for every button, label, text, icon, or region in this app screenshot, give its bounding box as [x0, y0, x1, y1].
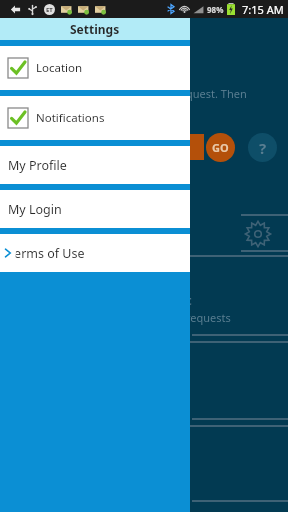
button[interactable]: My Login — [0, 190, 190, 228]
staticText: GO — [212, 140, 229, 155]
button[interactable]: Terms of Use — [0, 234, 190, 272]
button[interactable]: Help — [248, 133, 277, 162]
staticText: Location — [36, 60, 83, 76]
staticText: quest. Then — [186, 86, 247, 101]
button[interactable]: Settings — [243, 219, 273, 249]
staticText: t — [186, 291, 192, 309]
staticText: Settings — [70, 21, 120, 37]
staticText: My Profile — [8, 157, 67, 174]
button[interactable]: Notifications — [0, 96, 190, 140]
staticText: requests — [186, 310, 231, 325]
staticText: 98% — [207, 4, 224, 15]
button[interactable]: Open drawer — [0, 238, 16, 268]
button[interactable]: GO — [206, 133, 235, 162]
staticText: 7:15 AM — [242, 2, 284, 17]
staticText: Notifications — [36, 110, 105, 126]
staticText: Terms of Use — [8, 245, 85, 262]
staticText: ? — [259, 138, 267, 158]
staticText: ET — [46, 6, 53, 14]
button[interactable]: Location — [0, 46, 190, 90]
button[interactable]: My Profile — [0, 146, 190, 184]
staticText: My Login — [8, 201, 62, 218]
